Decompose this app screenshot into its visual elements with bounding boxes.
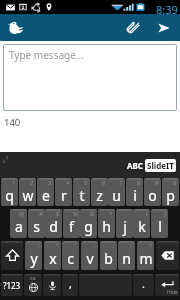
staticText: / xyxy=(130,242,133,250)
button[interactable]: 6 xyxy=(91,178,108,206)
staticText: ?123 xyxy=(3,280,21,291)
button[interactable]: Enter xyxy=(155,274,179,296)
button[interactable]: / xyxy=(118,241,135,270)
staticText: ' xyxy=(75,242,77,250)
button[interactable]: Voice input xyxy=(43,274,61,296)
staticText: , xyxy=(69,276,72,291)
staticText: g xyxy=(84,217,93,236)
staticText: b xyxy=(104,249,113,268)
staticText: # xyxy=(39,210,43,218)
button[interactable]: 2 xyxy=(19,178,36,206)
staticText: 8:39 xyxy=(156,2,178,16)
staticText: 4 xyxy=(66,179,70,187)
staticText: co xyxy=(30,275,36,282)
staticText: " xyxy=(56,242,59,250)
button[interactable]: @ xyxy=(10,209,27,238)
staticText: ? xyxy=(149,242,152,250)
button[interactable]: ; xyxy=(100,241,117,270)
staticText: ! xyxy=(38,242,40,250)
button[interactable]: Change language xyxy=(24,274,42,296)
button[interactable]: & xyxy=(80,209,97,238)
staticText: 7 xyxy=(119,179,123,187)
staticText: k xyxy=(138,217,146,236)
staticText: x xyxy=(49,249,57,268)
button[interactable]: ! xyxy=(25,241,42,270)
button[interactable]: Send xyxy=(150,14,177,41)
staticText: f xyxy=(69,217,74,236)
button[interactable]: 3 xyxy=(37,178,54,206)
staticText: j xyxy=(123,217,127,236)
button[interactable]: ? xyxy=(137,241,154,270)
staticText: 3 xyxy=(48,179,52,187)
staticText: r xyxy=(61,186,67,205)
staticText: i xyxy=(133,186,137,205)
staticText: 6 xyxy=(102,179,106,187)
staticText: p xyxy=(166,186,175,205)
button[interactable]: % xyxy=(63,209,80,238)
button[interactable]: 8 xyxy=(126,178,143,206)
button[interactable]: * xyxy=(98,209,115,238)
button[interactable]: " xyxy=(44,241,61,270)
staticText: 5 xyxy=(84,179,88,187)
staticText: & xyxy=(90,210,95,218)
staticText: ABC xyxy=(127,160,143,171)
button[interactable]: 4 xyxy=(55,178,72,206)
staticText: SlideIT xyxy=(147,160,174,171)
staticText: h xyxy=(102,217,111,236)
button[interactable]: 9 xyxy=(144,178,161,206)
staticText: l xyxy=(158,217,162,236)
staticText: o xyxy=(148,186,157,205)
staticText: $ xyxy=(56,210,60,218)
button[interactable]: Space xyxy=(79,274,132,296)
staticText: Hide xyxy=(167,289,178,296)
staticText: 2 xyxy=(30,179,34,187)
button[interactable]: 5 xyxy=(73,178,90,206)
staticText: 1 xyxy=(12,179,16,187)
button[interactable]: - xyxy=(116,209,133,238)
staticText: ) xyxy=(164,210,166,218)
staticText: 140 xyxy=(4,116,21,129)
button[interactable]: # xyxy=(28,209,45,238)
button[interactable]: , xyxy=(62,274,78,296)
staticText: a xyxy=(15,217,23,236)
staticText: ( xyxy=(146,210,148,218)
staticText: m xyxy=(139,249,153,268)
button[interactable]: Type message... xyxy=(3,44,177,111)
staticText: . xyxy=(142,276,145,291)
button[interactable]: Attach xyxy=(119,14,146,41)
staticText: q xyxy=(5,186,14,205)
staticText: : xyxy=(94,242,96,250)
staticText: * xyxy=(109,210,113,218)
staticText: d xyxy=(49,217,58,236)
staticText: t xyxy=(79,186,85,205)
button[interactable]: Backspace xyxy=(156,241,179,270)
staticText: 9 xyxy=(155,179,159,187)
staticText: e xyxy=(42,186,50,205)
staticText: @ xyxy=(19,210,25,218)
button[interactable]: Home xyxy=(2,14,29,41)
staticText: % xyxy=(73,210,78,218)
button[interactable]: 7 xyxy=(108,178,125,206)
staticText: 0 xyxy=(173,179,177,187)
button[interactable]: Shift xyxy=(1,241,23,270)
button[interactable]: ) xyxy=(151,209,168,238)
button[interactable]: Expand suggestions xyxy=(2,155,9,164)
staticText: z xyxy=(96,186,103,205)
button[interactable]: 1 xyxy=(1,178,18,206)
staticText: ; xyxy=(113,242,115,250)
staticText: s xyxy=(33,217,40,236)
button[interactable]: : xyxy=(81,241,98,270)
button[interactable]: ?123 xyxy=(1,274,23,296)
button[interactable]: 0 xyxy=(162,178,179,206)
staticText: u xyxy=(112,186,121,205)
button[interactable]: ( xyxy=(133,209,150,238)
button[interactable]: $ xyxy=(45,209,62,238)
button[interactable]: SlideIT xyxy=(147,160,174,171)
staticText: w xyxy=(22,186,34,205)
staticText: 8 xyxy=(137,179,141,187)
button[interactable]: ' xyxy=(62,241,79,270)
button[interactable]: . xyxy=(133,274,154,296)
staticText: v xyxy=(86,249,94,268)
staticText: - xyxy=(129,210,131,218)
staticText: n xyxy=(122,249,131,268)
